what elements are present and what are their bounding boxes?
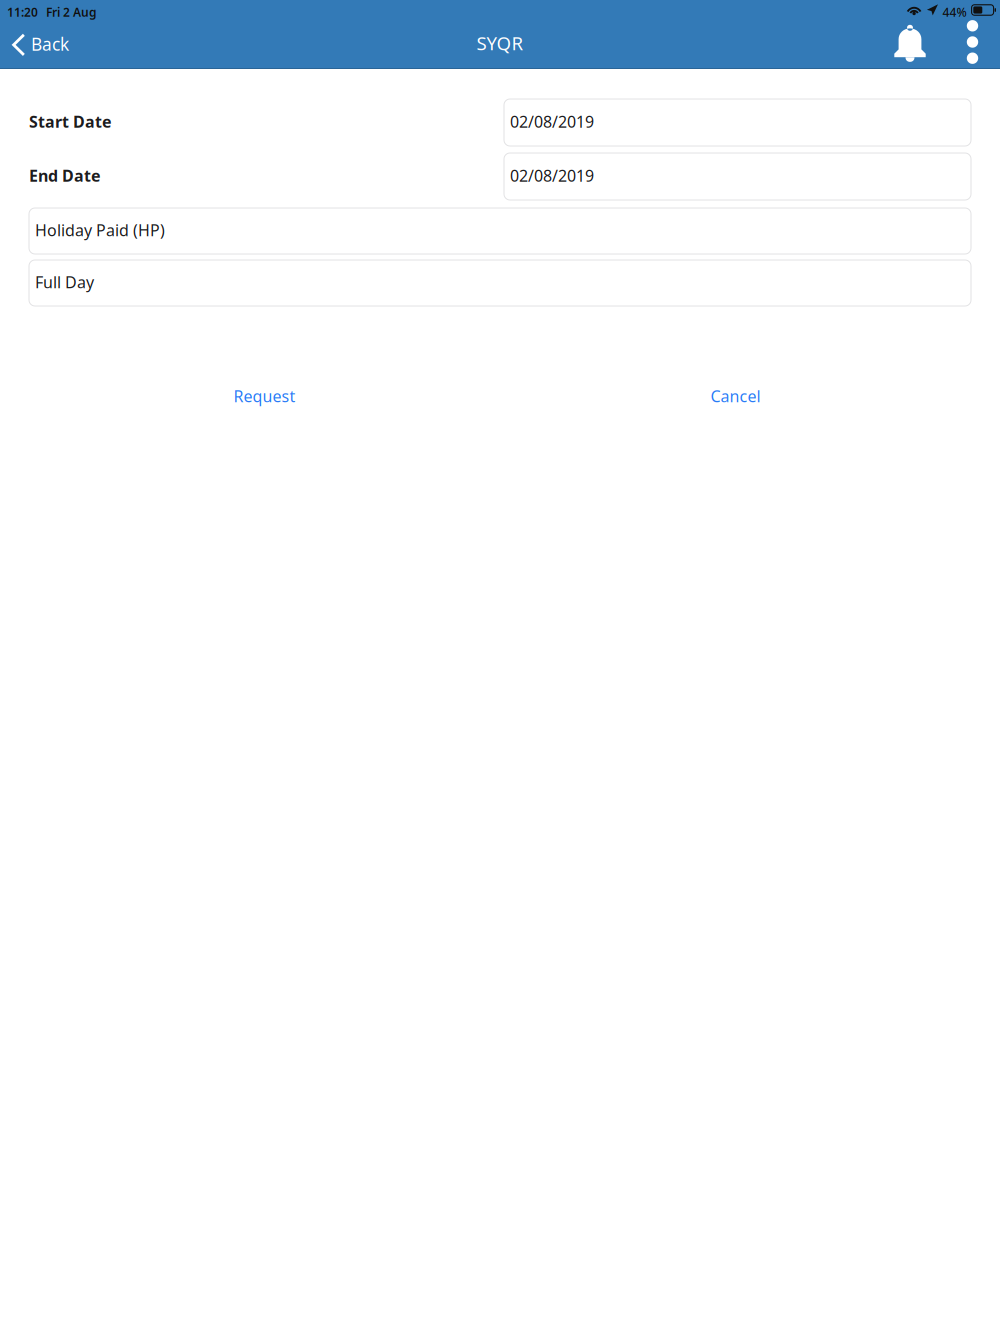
button[interactable]: Back (0, 24, 83, 68)
staticText: Holiday Paid (HP) (35, 219, 165, 241)
staticText: SYQR (476, 31, 523, 55)
staticText: 02/08/2019 (510, 111, 594, 132)
button[interactable]: Request (29, 374, 500, 418)
button[interactable]: Full Day (29, 260, 971, 306)
button[interactable]: Cancel (500, 374, 971, 418)
staticText: 44% (943, 4, 967, 20)
button[interactable]: Notifications (875, 24, 945, 68)
staticText: Fri 2 Aug (46, 4, 97, 20)
staticText: 02/08/2019 (510, 165, 594, 186)
button[interactable]: 02/08/2019 (504, 99, 971, 146)
staticText: 11:20 (7, 4, 38, 20)
staticText: Cancel (710, 385, 760, 407)
staticText: Back (31, 32, 69, 55)
staticText: End Date (29, 165, 101, 186)
staticText: Start Date (29, 111, 112, 132)
staticText: Request (233, 385, 295, 407)
button[interactable]: Holiday Paid (HP) (29, 208, 971, 254)
button[interactable]: More options (945, 24, 1000, 68)
staticText: Full Day (35, 271, 94, 293)
button[interactable]: 02/08/2019 (504, 153, 971, 200)
